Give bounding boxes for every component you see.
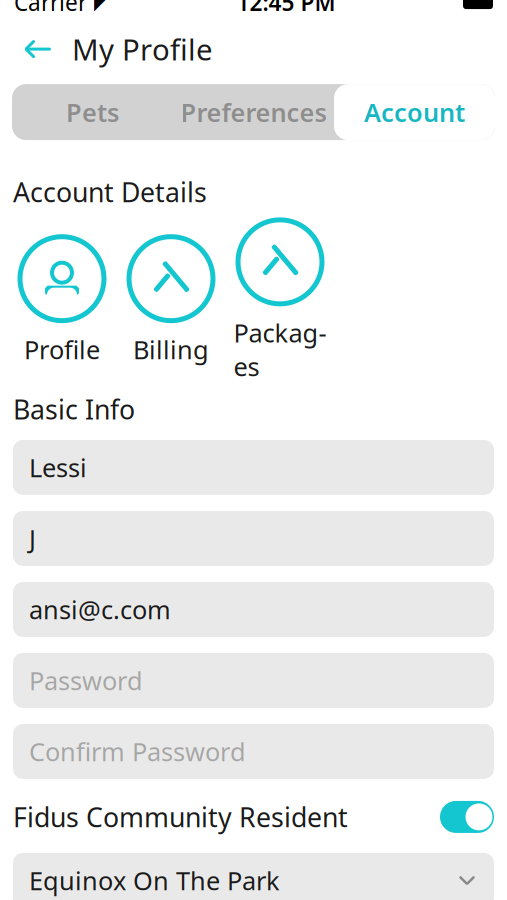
staticText: Profile — [24, 333, 100, 366]
staticText: Packages — [233, 316, 326, 383]
staticText: Lessi — [29, 451, 87, 484]
button[interactable]: Back — [16, 27, 60, 71]
staticText: Carrier — [14, 0, 87, 17]
staticText: ansi@c.com — [29, 593, 171, 626]
staticText: Confirm Password — [29, 735, 246, 768]
staticText: Account — [364, 95, 465, 129]
staticText: Equinox On The Park — [29, 864, 280, 897]
staticText: Basic Info — [13, 391, 135, 427]
staticText: Fidus Community Resident — [13, 799, 348, 835]
staticText: 12:45 PM — [236, 0, 335, 17]
button[interactable]: Account — [334, 84, 495, 140]
button[interactable]: Preferences — [173, 84, 334, 140]
button[interactable]: Password — [13, 653, 494, 708]
button[interactable]: Confirm Password — [13, 724, 494, 779]
staticText: Account Details — [13, 174, 207, 209]
button[interactable]: Pets — [12, 84, 173, 140]
staticText: My Profile — [72, 30, 213, 69]
button[interactable]: Packages — [230, 223, 330, 369]
staticText: Billing — [133, 333, 209, 366]
button[interactable]: ansi@c.com — [13, 582, 494, 637]
staticText: Pets — [66, 95, 119, 129]
staticText: J — [29, 522, 36, 555]
staticText: Preferences — [180, 95, 326, 129]
button[interactable]: Profile — [12, 223, 112, 369]
button[interactable]: Billing — [121, 223, 221, 369]
staticText: Password — [29, 664, 143, 697]
staticText: ◤ — [94, 0, 109, 13]
button[interactable]: Lessi — [13, 440, 494, 495]
button[interactable]: Fidus Community Resident — [0, 795, 507, 839]
button[interactable]: Equinox On The Park — [13, 853, 494, 900]
button[interactable]: J — [13, 511, 494, 566]
